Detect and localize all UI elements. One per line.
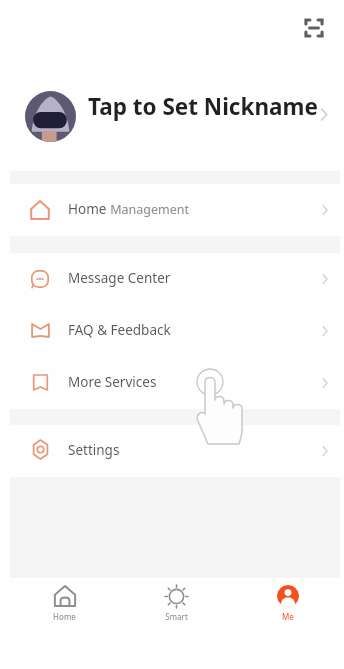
button[interactable]: Home [0,184,344,236]
staticText: Home [53,611,76,622]
button[interactable]: Message Center [0,253,344,305]
staticText: Smart [165,611,188,622]
button[interactable]: Home [9,578,120,669]
staticText: Settings [68,441,120,459]
button[interactable]: Scan [298,12,330,44]
staticText: Tap to Set Nickname [88,91,318,122]
button[interactable]: Tap to Set Nickname [0,90,344,142]
button[interactable]: FAQ & Feedback [0,305,344,357]
staticText: Home [68,200,107,218]
button[interactable]: Settings [0,425,344,477]
staticText: FAQ & Feedback [68,321,171,339]
staticText: Message Center [68,269,171,287]
staticText: Me [282,611,294,622]
staticText: Management [107,201,190,218]
button[interactable]: Me [232,578,344,669]
button[interactable]: More Services [0,357,344,409]
staticText: More Services [68,373,157,391]
button[interactable]: Smart [120,578,232,669]
